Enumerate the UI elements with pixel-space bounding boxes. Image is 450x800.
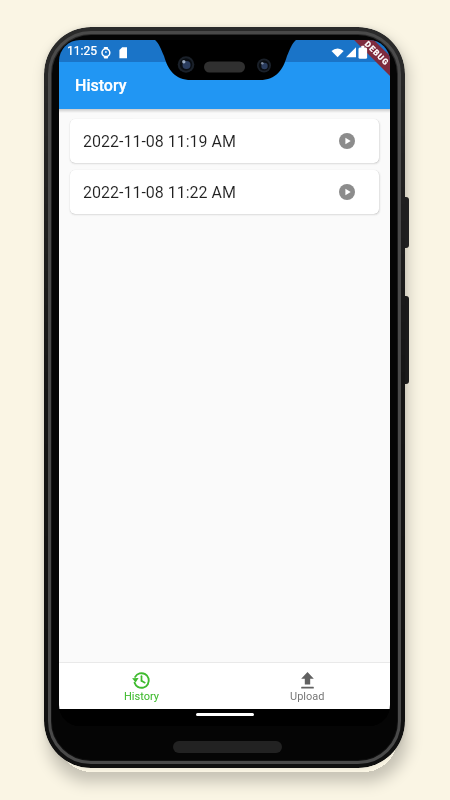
staticText: History: [75, 76, 127, 95]
staticText: 2022-11-08 11:19 AM: [83, 132, 236, 151]
button[interactable]: 2022-11-08 11:19 AM: [70, 119, 379, 163]
button[interactable]: [339, 133, 355, 149]
staticText: 11:25: [67, 44, 97, 58]
button[interactable]: 2022-11-08 11:22 AM: [70, 170, 379, 214]
staticText: 2022-11-08 11:22 AM: [83, 183, 236, 202]
staticText: Upload: [290, 690, 325, 703]
button[interactable]: History: [59, 662, 224, 709]
staticText: History: [124, 690, 159, 703]
button[interactable]: [339, 184, 355, 200]
button[interactable]: Upload: [224, 662, 390, 709]
staticText: DEBUG: [363, 40, 390, 68]
